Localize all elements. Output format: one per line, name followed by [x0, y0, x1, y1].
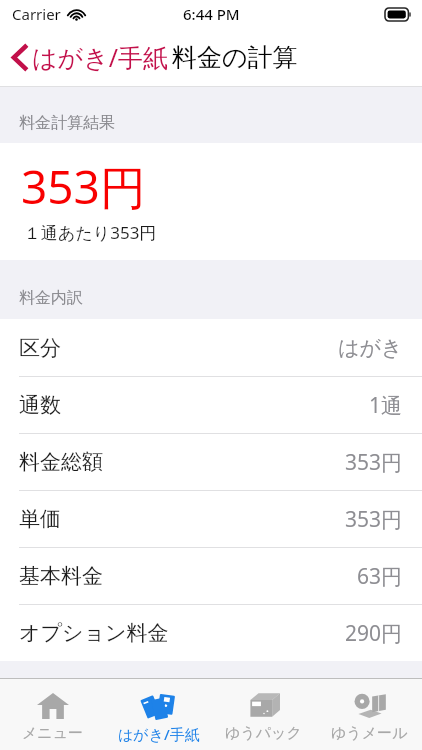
- button[interactable]: 基本料金: [0, 547, 422, 604]
- button[interactable]: ゆうパック: [211, 679, 316, 750]
- staticText: 1通: [369, 391, 403, 420]
- staticText: オプション料金: [19, 620, 169, 646]
- staticText: 基本料金: [19, 563, 103, 589]
- staticText: １通あたり353円: [24, 221, 157, 244]
- staticText: 料金の計算: [172, 42, 298, 73]
- staticText: 単価: [19, 506, 61, 532]
- staticText: Carrier: [12, 4, 61, 24]
- staticText: 63円: [357, 562, 403, 591]
- button[interactable]: メニュー: [0, 679, 105, 750]
- staticText: 区分: [19, 335, 61, 361]
- button[interactable]: ゆうメール: [317, 679, 422, 750]
- staticText: 料金総額: [19, 449, 103, 475]
- button[interactable]: はがき/手紙: [9, 36, 172, 78]
- staticText: メニュー: [22, 724, 84, 743]
- staticText: ゆうメール: [331, 724, 408, 743]
- staticText: はがき/手紙: [118, 724, 200, 744]
- staticText: 料金内訳: [19, 288, 83, 308]
- staticText: 通数: [19, 392, 61, 418]
- button[interactable]: 料金総額: [0, 433, 422, 490]
- button[interactable]: はがき/手紙: [106, 679, 211, 750]
- staticText: ゆうパック: [225, 724, 302, 743]
- staticText: 353円: [345, 505, 403, 534]
- staticText: 290円: [345, 619, 403, 648]
- button[interactable]: 単価: [0, 490, 422, 547]
- staticText: 6:44 PM: [183, 4, 240, 24]
- staticText: 353円: [21, 155, 146, 218]
- staticText: 料金計算結果: [19, 113, 115, 133]
- staticText: 353円: [345, 448, 403, 477]
- button[interactable]: 区分: [0, 319, 422, 376]
- button[interactable]: 通数: [0, 376, 422, 433]
- staticText: はがき/手紙: [32, 40, 169, 74]
- staticText: はがき: [338, 335, 403, 361]
- button[interactable]: オプション料金: [0, 604, 422, 661]
